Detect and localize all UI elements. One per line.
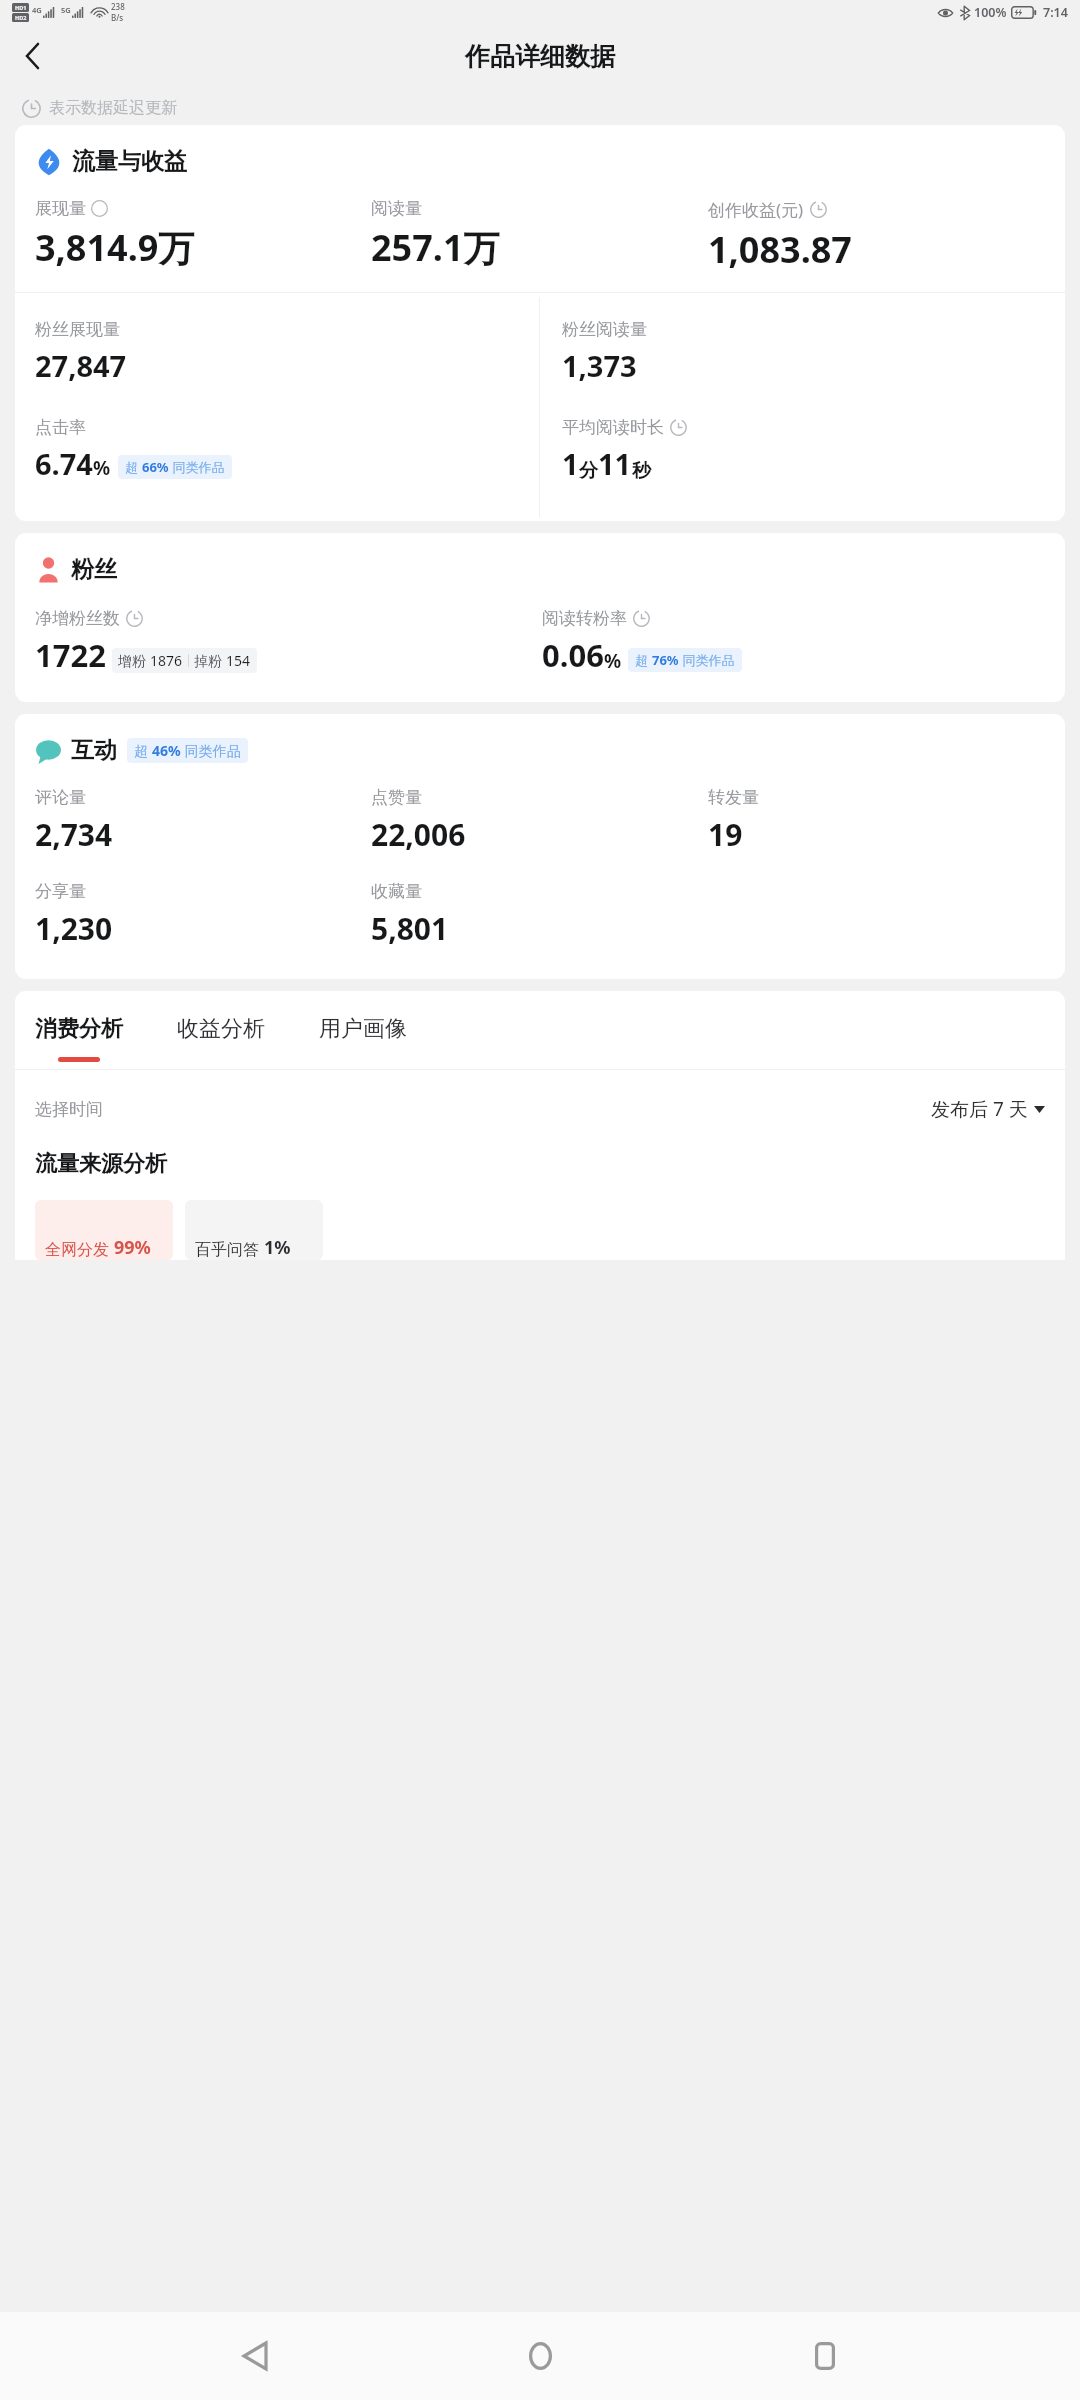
staticText: 5G (61, 5, 71, 15)
staticText: 2,734 (35, 814, 113, 855)
button[interactable]: 超 (125, 458, 225, 476)
staticText: 选择时间 (35, 1099, 103, 1120)
staticText: 点击率 (35, 417, 86, 438)
staticText: 1 (562, 444, 579, 483)
staticText: 流量来源分析 (35, 1150, 167, 1178)
staticText: 粉丝展现量 (35, 319, 120, 340)
staticText: 阅读量 (371, 198, 422, 219)
staticText: 评论量 (35, 787, 86, 808)
staticText: 4G (32, 5, 42, 15)
staticText: 转发量 (708, 787, 759, 808)
staticText: 百乎问答 (195, 1240, 259, 1260)
button[interactable]: 超 (635, 651, 735, 669)
staticText: 流量与收益 (72, 147, 187, 176)
staticText: 3,814.9万 (35, 223, 195, 272)
staticText: 阅读转粉率 (542, 608, 627, 629)
staticText: 46% (152, 741, 181, 760)
staticText: 1876 (150, 651, 183, 670)
staticText: 分 (579, 459, 598, 483)
staticText: 粉丝阅读量 (562, 319, 647, 340)
staticText: 99% (114, 1235, 151, 1260)
staticText: 展现量 (35, 198, 86, 219)
staticText: 同类作品 (169, 458, 225, 476)
staticText: HD1 (15, 4, 27, 11)
staticText: 66% (142, 458, 169, 476)
button[interactable]: 全网分发 (35, 1200, 173, 1260)
button[interactable]: 百乎问答 (185, 1200, 323, 1260)
staticText: % (93, 455, 111, 481)
staticText: 创作收益(元) (708, 198, 804, 221)
staticText: 互动 (71, 736, 117, 765)
staticText: 6.74 (35, 444, 93, 483)
staticText: 76% (652, 651, 679, 669)
staticText: 收藏量 (371, 881, 422, 902)
staticText: 同类作品 (679, 651, 735, 669)
staticText: 作品详细数据 (465, 41, 615, 72)
staticText: 100% (974, 4, 1007, 21)
staticText: 1,083.87 (708, 225, 852, 274)
staticText: 1,230 (35, 908, 113, 949)
staticText: 154 (226, 651, 251, 670)
staticText: 超 (125, 458, 142, 476)
button[interactable]: Recents (795, 2326, 855, 2386)
staticText: 27,847 (35, 346, 127, 385)
staticText: 1,373 (562, 346, 637, 385)
staticText: 5,801 (371, 908, 449, 949)
staticText: 消费分析 (35, 1015, 123, 1043)
staticText: 1722 (35, 634, 106, 676)
staticText: 粉丝 (71, 555, 117, 584)
staticText: 22,006 (371, 814, 466, 855)
staticText: 平均阅读时长 (562, 417, 664, 438)
staticText: 7:14 (1043, 4, 1068, 21)
staticText: 超 (134, 741, 152, 760)
staticText: 19 (708, 814, 743, 855)
staticText: 238 (111, 1, 125, 12)
staticText: 257.1万 (371, 223, 500, 272)
staticText: 净增粉丝数 (35, 608, 120, 629)
button[interactable]: 超 (134, 741, 241, 760)
staticText: 超 (635, 651, 652, 669)
staticText: 用户画像 (319, 1015, 407, 1043)
staticText: 发布后 7 天 (931, 1096, 1028, 1122)
staticText: 点赞量 (371, 787, 422, 808)
staticText: 分享量 (35, 881, 86, 902)
staticText: 秒 (632, 459, 651, 483)
button[interactable]: Home (510, 2326, 570, 2386)
button[interactable]: 消费分析 (35, 1015, 123, 1069)
staticText: 1% (264, 1235, 291, 1260)
staticText: B/s (111, 12, 124, 23)
button[interactable]: Back (225, 2326, 285, 2386)
staticText: 同类作品 (181, 741, 241, 760)
staticText: 表示数据延迟更新 (49, 98, 177, 118)
staticText: 11 (598, 444, 632, 483)
staticText: HD2 (15, 14, 27, 21)
button[interactable]: Back (8, 32, 56, 80)
staticText: % (604, 648, 622, 674)
staticText: 收益分析 (177, 1015, 265, 1043)
staticText: 0.06 (542, 634, 604, 676)
button[interactable]: 用户画像 (319, 1015, 407, 1069)
staticText: 全网分发 (45, 1240, 109, 1260)
button[interactable]: 收益分析 (177, 1015, 265, 1069)
staticText: 掉粉 (194, 651, 226, 670)
button[interactable]: 发布后 7 天 (931, 1096, 1045, 1122)
staticText: 增粉 (118, 651, 150, 670)
